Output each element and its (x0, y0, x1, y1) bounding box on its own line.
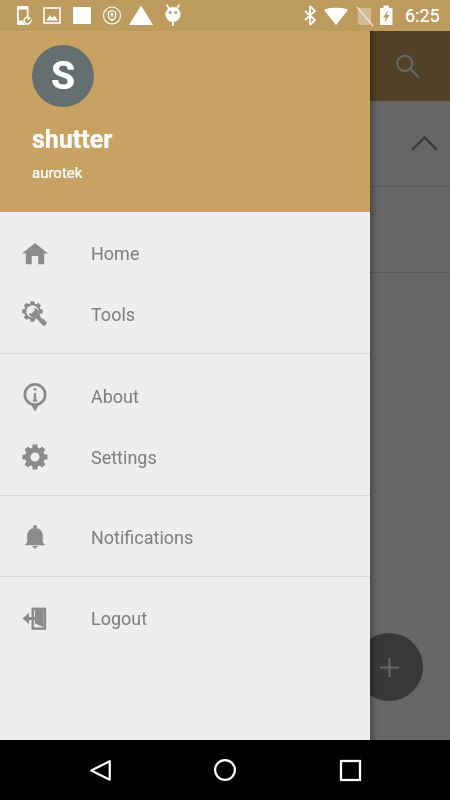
staticText: Settings (91, 447, 157, 468)
staticText: Logout (91, 608, 148, 629)
button[interactable]: Search (387, 46, 427, 86)
button[interactable]: Logout (0, 587, 370, 648)
button[interactable]: Home (0, 222, 370, 283)
staticText: Home (91, 243, 140, 264)
button[interactable]: Settings (0, 426, 370, 487)
staticText: shutter (32, 125, 113, 154)
staticText: Notifications (91, 527, 194, 548)
button[interactable]: Recents (330, 750, 370, 790)
staticText: S (51, 53, 76, 99)
staticText: About (91, 386, 139, 407)
button[interactable]: Notifications (0, 506, 370, 567)
staticText: aurotek (32, 164, 83, 182)
button[interactable]: Back (80, 750, 120, 790)
staticText: Tools (91, 304, 136, 325)
button[interactable]: Add (355, 633, 423, 701)
staticText: 6:25 (405, 5, 440, 26)
button[interactable]: Tools (0, 283, 370, 344)
button[interactable]: Home (205, 750, 245, 790)
button[interactable]: About (0, 365, 370, 426)
